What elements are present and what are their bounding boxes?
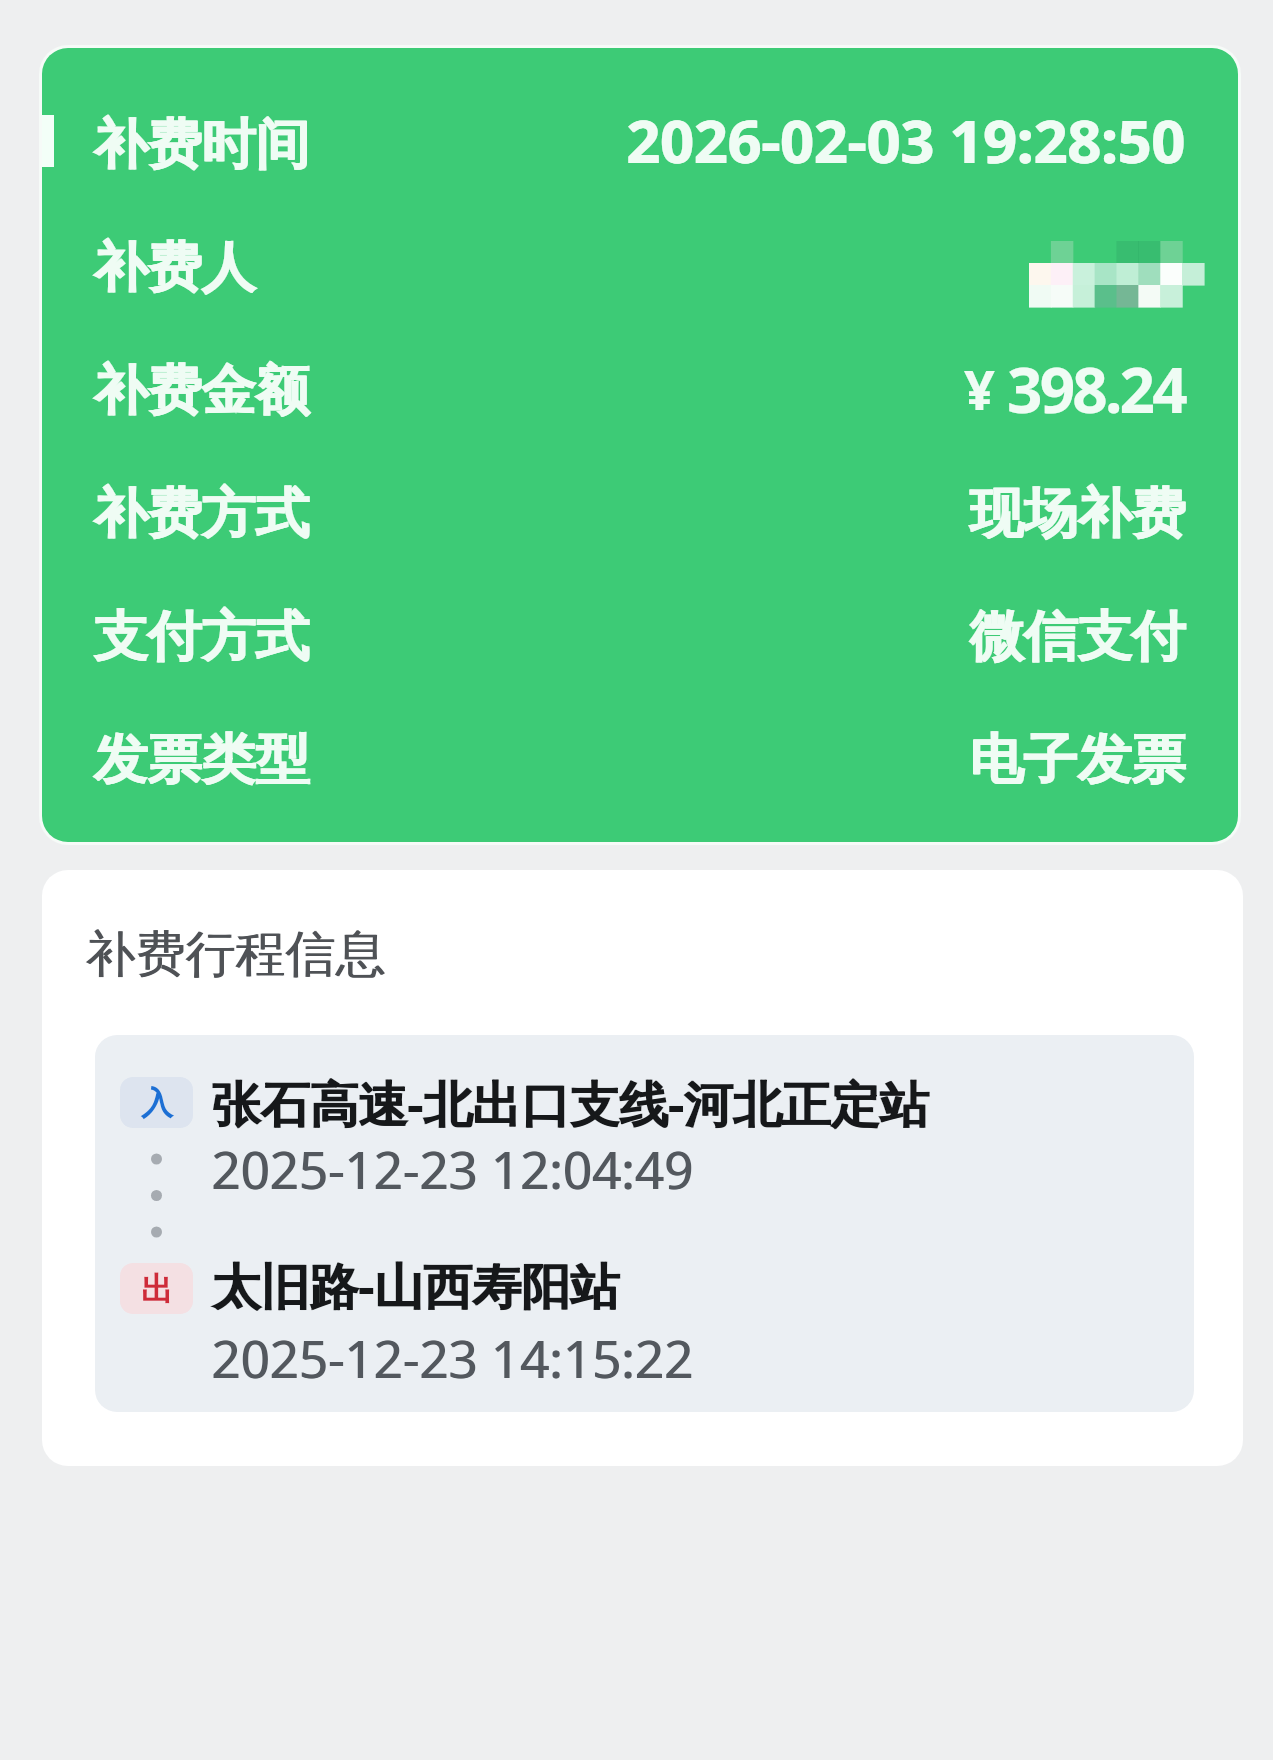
staticText: 补费金额: [94, 357, 310, 425]
staticText: 支付方式: [93, 603, 309, 671]
staticText: 补费时间: [94, 111, 310, 179]
button[interactable]: 补费时间: [93, 83, 1185, 206]
other: Route connector: [120, 1145, 193, 1275]
staticText: 补费时间: [93, 111, 309, 179]
button[interactable]: 支付方式: [93, 575, 1185, 698]
staticText: 补费方式: [94, 480, 310, 548]
staticText: 张石高速-北出口支线-河北正定站: [211, 1070, 929, 1137]
button[interactable]: Entry station: [95, 1035, 1194, 1412]
button[interactable]: 补费方式: [93, 452, 1185, 575]
staticText: 2026-02-03 19:28:50: [626, 100, 1185, 180]
staticText: 电子发票: [969, 726, 1185, 794]
staticText: 2025-12-23 12:04:49: [211, 1134, 693, 1203]
staticText: 发票类型: [94, 726, 310, 794]
staticText: 微信支付: [970, 603, 1186, 671]
other: Payer name hidden: [1029, 241, 1204, 307]
staticText: 补费行程信息: [85, 923, 385, 986]
staticText: 现场补费: [970, 480, 1186, 548]
staticText: ¥: [964, 352, 995, 426]
button[interactable]: 补费金额: [93, 329, 1185, 452]
staticText: 电子发票: [970, 726, 1186, 794]
button[interactable]: Entry station: [120, 1077, 193, 1128]
staticText: 补费金额: [93, 357, 309, 425]
staticText: 张石高速-北出口支线-河北正定站: [212, 1070, 930, 1137]
staticText: 补费行程信息: [86, 923, 386, 986]
staticText: 补费人: [94, 234, 256, 302]
staticText: 太旧路-山西寿阳站: [211, 1252, 619, 1319]
staticText: 2025-12-23 14:15:22: [212, 1323, 694, 1392]
button[interactable]: 补费时间: [42, 48, 1238, 842]
staticText: 太旧路-山西寿阳站: [212, 1252, 620, 1319]
staticText: 398.24: [1007, 347, 1185, 431]
staticText: 现场补费: [969, 480, 1185, 548]
staticText: 补费方式: [93, 480, 309, 548]
staticText: 2026-02-03 19:28:50: [627, 100, 1186, 180]
staticText: 补费人: [93, 234, 255, 302]
staticText: 出: [141, 1269, 173, 1309]
staticText: 入: [141, 1083, 173, 1123]
staticText: 支付方式: [94, 603, 310, 671]
button[interactable]: 补费人: [93, 206, 1185, 329]
staticText: 发票类型: [93, 726, 309, 794]
staticText: 微信支付: [969, 603, 1185, 671]
button[interactable]: 发票类型: [93, 698, 1185, 821]
button[interactable]: Exit station: [120, 1263, 193, 1314]
staticText: 2025-12-23 14:15:22: [211, 1323, 693, 1392]
staticText: 2025-12-23 12:04:49: [212, 1134, 694, 1203]
